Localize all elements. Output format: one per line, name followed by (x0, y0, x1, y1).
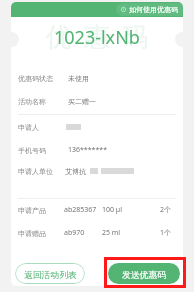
staticText: 如何使用优惠码 (129, 5, 178, 14)
staticText: 活动名称 (18, 97, 46, 106)
staticText: 申请人单位 (18, 167, 53, 176)
staticText: 1个 (160, 228, 172, 238)
button[interactable]: 发送优惠码 (108, 263, 180, 284)
staticText: 买二赠一 (68, 97, 96, 106)
staticText: ab970 (64, 228, 85, 238)
staticText: 发送优惠码 (122, 270, 166, 281)
staticText: 25 ml (102, 228, 121, 238)
staticText: 返回活动列表 (24, 270, 77, 281)
staticText: 艾博抗 (65, 167, 86, 176)
staticText: 100 µl (102, 205, 122, 215)
staticText: 申请产品 (18, 206, 46, 215)
staticText: 2个 (160, 205, 172, 215)
staticText: 申请赠品 (18, 229, 46, 238)
staticText: 优惠码状态 (18, 74, 53, 83)
staticText: 申请人 (18, 123, 39, 132)
staticText: 136******* (68, 145, 108, 155)
staticText: 未使用 (68, 74, 89, 83)
staticText: 1023-lxNb (54, 25, 140, 45)
staticText: 手机号码 (18, 146, 46, 155)
button[interactable]: 如何使用优惠码 (116, 3, 183, 16)
staticText: ab285367 (64, 205, 97, 215)
button[interactable]: 返回活动列表 (15, 263, 85, 284)
staticText: 优惠码 (40, 21, 154, 53)
